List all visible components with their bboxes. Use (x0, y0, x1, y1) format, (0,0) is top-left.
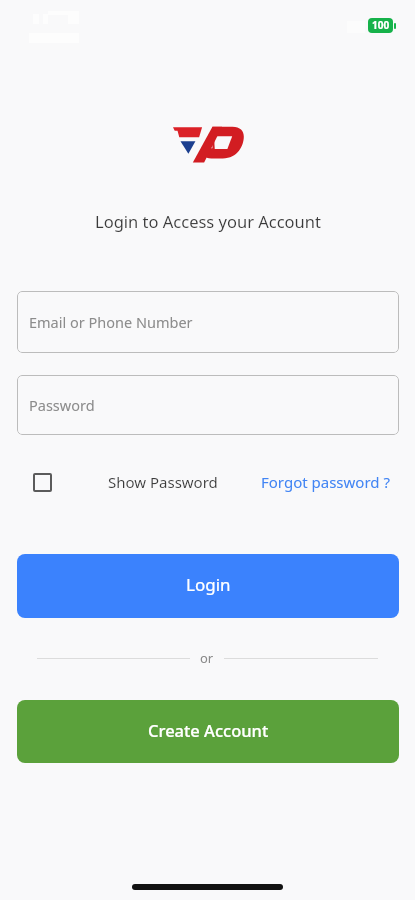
button[interactable]: Login (17, 554, 399, 618)
button[interactable]: Show password checkbox (33, 472, 222, 492)
other: Show password checkbox (33, 473, 52, 492)
staticText: Forgot password ? (261, 472, 390, 492)
staticText: Create Account (148, 719, 269, 741)
staticText: 100 (372, 18, 390, 32)
staticText: Login to Access your Account (95, 210, 321, 232)
staticText: Show Password (108, 472, 218, 492)
staticText: Login (186, 573, 231, 596)
staticText: Email or Phone Number (29, 312, 193, 332)
button[interactable]: Email or Phone Number (17, 291, 399, 353)
button[interactable]: Create Account (17, 700, 399, 763)
button[interactable]: Forgot password ? (261, 470, 390, 494)
staticText: or (200, 649, 214, 667)
button[interactable]: Password (17, 375, 399, 435)
staticText: Password (29, 395, 95, 415)
